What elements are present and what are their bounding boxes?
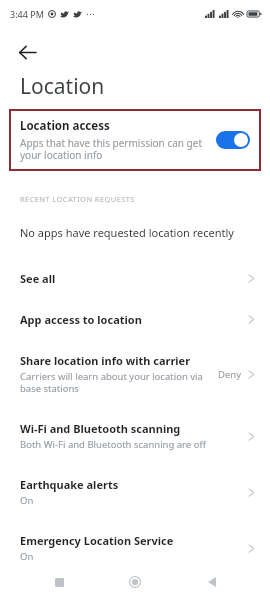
staticText: Location access — [20, 118, 110, 134]
button[interactable]: Location access — [9, 109, 261, 171]
staticText: See all — [20, 271, 56, 286]
staticText: On — [20, 550, 34, 563]
staticText: RECENT LOCATION REQUESTS — [20, 194, 135, 204]
button[interactable]: See all — [0, 258, 270, 299]
staticText: ⋯ — [86, 9, 95, 19]
staticText: 3:44 PM — [10, 8, 44, 20]
button[interactable]: Emergency Location Service — [0, 520, 270, 576]
staticText: App access to location — [20, 312, 142, 327]
staticText: Location — [20, 72, 105, 101]
staticText: Earthquake alerts — [20, 477, 119, 492]
button[interactable]: App access to location — [0, 299, 270, 340]
button[interactable]: Earthquake alerts — [0, 464, 270, 520]
staticText: No apps have requested location recently — [20, 225, 234, 240]
button[interactable]: Home — [117, 564, 153, 600]
button[interactable]: No apps have requested location recently — [0, 204, 270, 258]
button[interactable]: Location access toggle — [216, 131, 250, 149]
button[interactable]: Share location info with carrier — [0, 340, 270, 408]
staticText: Both Wi-Fi and Bluetooth scanning are of… — [20, 438, 206, 451]
staticText: Carriers will learn about your location … — [20, 370, 218, 395]
button[interactable]: Recent apps — [41, 564, 77, 600]
button[interactable]: Back — [194, 564, 230, 600]
staticText: Wi-Fi and Bluetooth scanning — [20, 421, 181, 436]
staticText: Share location info with carrier — [20, 353, 191, 368]
staticText: Deny — [218, 368, 242, 381]
staticText: Emergency Location Service — [20, 533, 174, 548]
staticText: Apps that have this permission can get y… — [20, 136, 206, 162]
button[interactable]: Wi-Fi and Bluetooth scanning — [0, 408, 270, 464]
button[interactable]: Back — [9, 34, 45, 70]
staticText: On — [20, 494, 34, 507]
